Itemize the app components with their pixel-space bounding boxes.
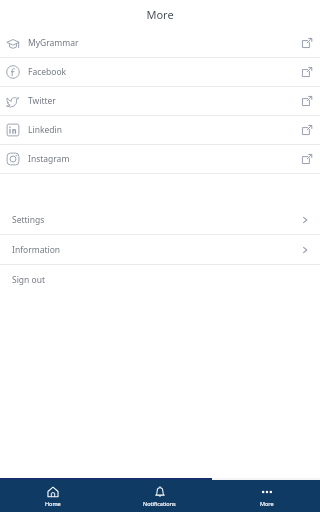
button[interactable]: Information — [0, 235, 320, 264]
staticText: Sign out — [12, 274, 46, 286]
button[interactable]: MyGrammar — [0, 29, 320, 57]
button[interactable]: Sign out — [0, 265, 320, 294]
other: Open Instagram — [301, 153, 313, 165]
other: Open MyGrammar — [301, 37, 313, 49]
staticText: More — [260, 500, 274, 507]
other: Open Facebook — [301, 66, 313, 78]
button[interactable]: Settings — [0, 205, 320, 234]
button[interactable]: Instagram — [0, 145, 320, 173]
other: Open Twitter — [301, 95, 313, 107]
button[interactable]: Facebook — [0, 58, 320, 86]
staticText: Facebook — [28, 66, 67, 78]
staticText: Instagram — [28, 153, 70, 165]
staticText: Twitter — [28, 95, 56, 107]
other: Open Linkedin — [301, 124, 313, 136]
staticText: Home — [45, 500, 61, 507]
staticText: Notifications — [143, 500, 176, 507]
staticText: Information — [12, 244, 61, 256]
staticText: Linkedin — [28, 124, 62, 136]
staticText: Settings — [12, 214, 45, 226]
staticText: MyGrammar — [28, 37, 79, 49]
button[interactable]: Notifications — [106, 480, 213, 512]
button[interactable]: More — [213, 480, 320, 512]
button[interactable]: Twitter — [0, 87, 320, 115]
staticText: More — [146, 7, 174, 22]
button[interactable]: Linkedin — [0, 116, 320, 144]
button[interactable]: Home — [0, 480, 106, 512]
